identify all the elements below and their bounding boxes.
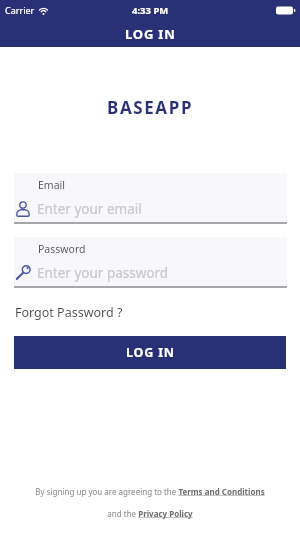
staticText: LOG IN [126,344,175,361]
staticText: Carrier [5,4,35,16]
staticText: 4:33 PM [132,4,169,17]
staticText: Enter your password [37,264,169,282]
staticText: LOG IN [125,25,176,43]
staticText: Email [38,178,65,192]
button[interactable]: By signing up you are agreeing to the Te… [35,486,265,497]
staticText: Forgot Password ? [15,304,123,321]
staticText: BASEAPP [107,96,194,118]
button[interactable]: Password [14,237,287,286]
button[interactable]: and the Privacy Policy [107,508,193,519]
button[interactable]: Email [14,173,287,222]
staticText: Password [38,242,86,256]
button[interactable]: LOG IN [14,336,286,369]
staticText: Enter your email [37,200,142,218]
button[interactable]: Forgot Password ? [15,304,123,321]
